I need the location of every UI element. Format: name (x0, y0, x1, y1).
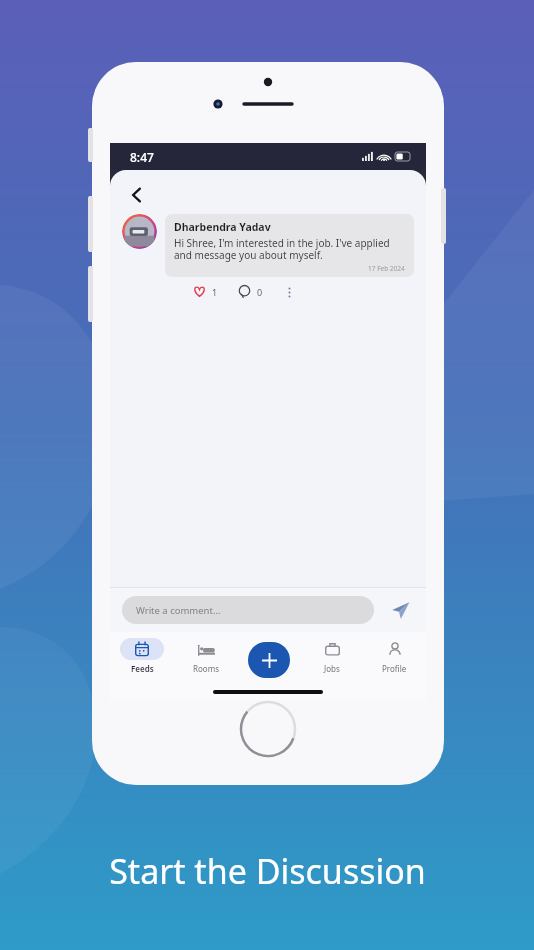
staticText: 1 (212, 286, 218, 298)
staticText: Start the Discussion (109, 848, 426, 894)
button[interactable]: Profile (363, 638, 426, 674)
button[interactable]: Send (386, 596, 414, 624)
button[interactable]: Back (120, 178, 154, 212)
staticText: Profile (382, 663, 407, 674)
staticText: Jobs (324, 663, 340, 674)
button[interactable]: 0 (236, 283, 265, 300)
button[interactable]: Rooms (174, 638, 237, 674)
staticText: 8:47 (130, 149, 154, 165)
button[interactable]: Create new post (248, 642, 290, 678)
staticText: 0 (257, 286, 263, 298)
button[interactable]: Jobs (300, 638, 363, 674)
staticText: Rooms (193, 663, 219, 674)
button[interactable]: Feeds (110, 638, 174, 674)
button[interactable]: Dharbendra Yadav (165, 214, 414, 277)
staticText: Hi Shree, I'm interested in the job. I'v… (174, 236, 405, 262)
staticText: 17 Feb 2024 (368, 264, 405, 273)
staticText: Write a comment... (136, 604, 221, 617)
button[interactable]: 1 (191, 283, 220, 300)
staticText: Dharbendra Yadav (174, 220, 271, 234)
staticText: Feeds (131, 663, 154, 674)
button[interactable]: More options (281, 284, 297, 300)
button[interactable]: Write a comment... (122, 596, 374, 624)
